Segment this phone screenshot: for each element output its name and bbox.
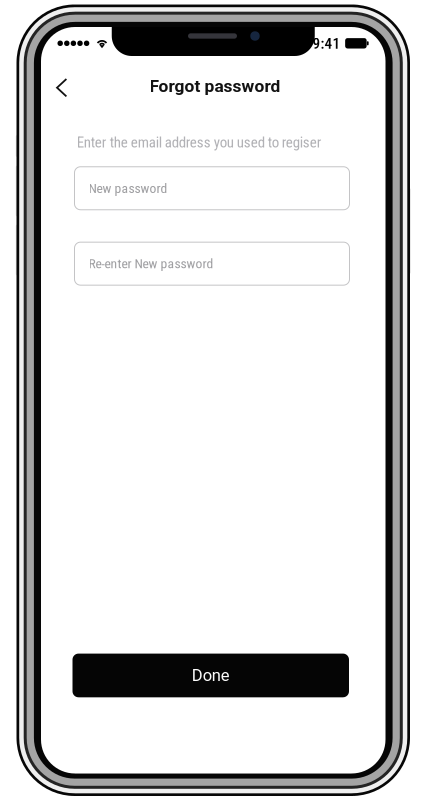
staticText: Forgot password bbox=[149, 76, 280, 96]
button[interactable]: Re-enter New password bbox=[74, 242, 349, 285]
button[interactable]: Back bbox=[44, 67, 80, 109]
staticText: Done bbox=[192, 666, 230, 685]
button[interactable]: New password bbox=[74, 167, 349, 210]
staticText: New password bbox=[88, 180, 167, 196]
button[interactable]: Done bbox=[72, 654, 349, 697]
staticText: 9:41 bbox=[313, 35, 341, 52]
staticText: Enter the email address you used to regi… bbox=[77, 134, 322, 151]
staticText: Re-enter New password bbox=[88, 256, 213, 272]
